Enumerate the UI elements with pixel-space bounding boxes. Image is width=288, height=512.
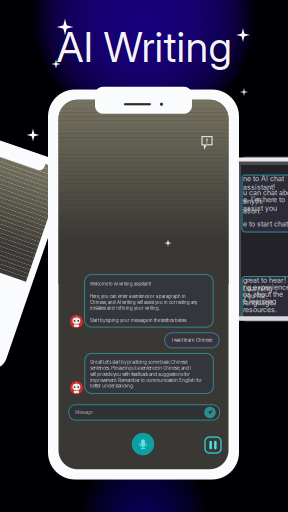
staticText: great to hear! Learning [243, 276, 286, 293]
staticText: better understanding. [90, 383, 134, 389]
button[interactable]: Message [69, 405, 220, 420]
staticText: I want learn Chinese [172, 338, 212, 343]
staticText: Welcome to AI writing assistant! [90, 281, 151, 287]
staticText: will provide you with feedback and sugge… [90, 372, 190, 377]
staticText: e learning resources. [243, 297, 277, 314]
staticText: mistakes and refining your writing. [90, 306, 160, 311]
button[interactable]: I want learn Chinese [165, 333, 219, 348]
staticText: improvement. Remember to communicate in … [90, 378, 202, 383]
staticText: Chinese, and AI writing will assist you … [90, 300, 197, 305]
button[interactable]: Report [199, 134, 215, 150]
button[interactable]: Send [204, 406, 216, 418]
staticText: Here, you can enter a sentence or a para… [90, 294, 186, 299]
staticText: ns about the language [243, 290, 283, 307]
staticText: ation. [243, 207, 261, 215]
button[interactable]: Voice input [131, 433, 154, 456]
staticText: ne to AI chat assistant! [243, 175, 284, 191]
staticText: u can chat about anythi [243, 189, 288, 205]
staticText: AI Writing [56, 22, 231, 72]
button[interactable]: Stop [204, 436, 222, 454]
staticText: e to start chatting! [243, 220, 288, 228]
staticText: e. I'm here to assist you [243, 196, 285, 212]
staticText: ng experience. If you ha [243, 283, 288, 300]
staticText: Great! Let's start by practicing some ba… [90, 360, 187, 365]
staticText: Message [75, 410, 92, 415]
staticText: sentences. Please input a sentence in Ch… [90, 366, 191, 371]
staticText: Start by typing your message in the text… [90, 318, 187, 323]
